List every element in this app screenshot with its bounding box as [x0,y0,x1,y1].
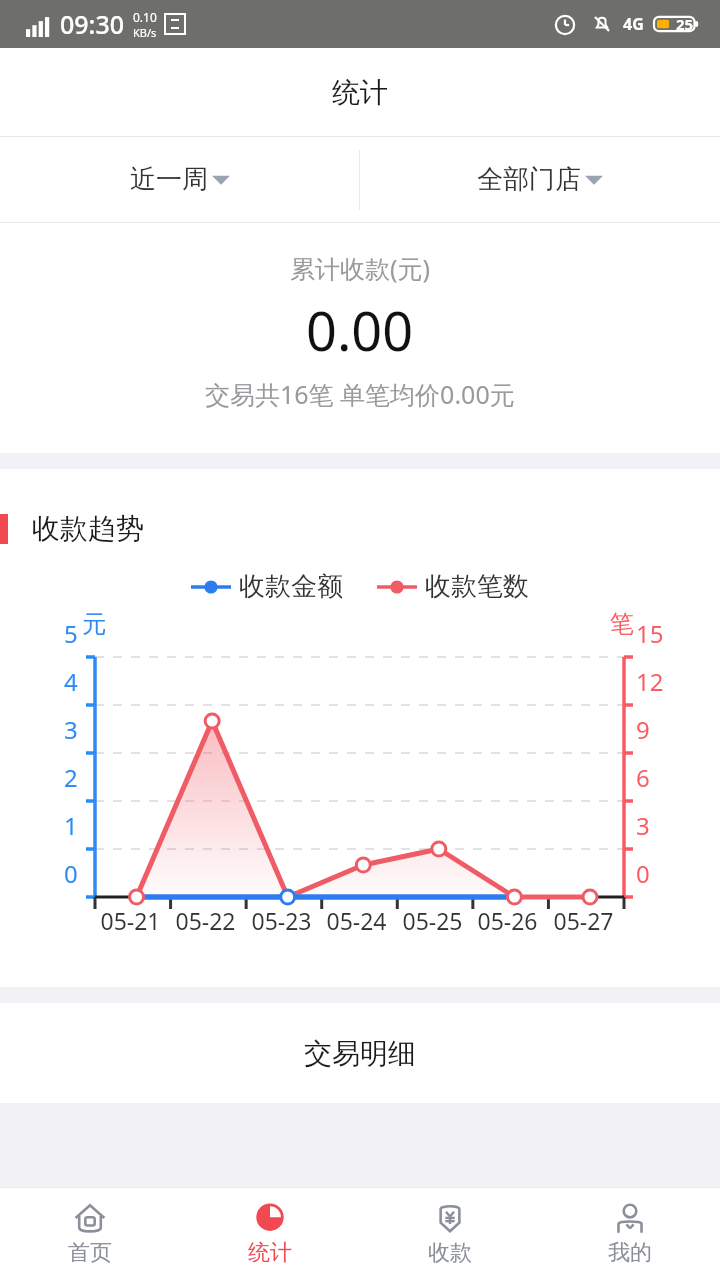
staticText: 12 [636,665,664,698]
staticText: 6 [636,761,650,794]
staticText: 统计 [332,75,388,110]
staticText: 9 [636,713,650,746]
staticText: 05-21 [100,905,161,936]
staticText: 累计收款(元) [290,251,431,285]
staticText: 0.00 [306,293,414,367]
staticText: 近一周 [130,163,208,196]
staticText: 笔 [610,609,634,639]
button[interactable]: 全部门店 [360,137,720,222]
staticText: 4G [623,13,644,35]
staticText: 3 [636,809,650,842]
staticText: 收款 [428,1239,472,1267]
staticText: 0 [636,857,650,890]
staticText: 统计 [248,1239,292,1267]
staticText: 全部门店 [477,163,581,196]
staticText: 交易明细 [304,1036,416,1071]
staticText: 2 [64,761,78,794]
staticText: 09:30 [60,7,125,41]
staticText: 05-25 [402,905,463,936]
staticText: 15 [636,617,664,650]
staticText: 05-27 [553,905,614,936]
staticText: 3 [64,713,78,746]
staticText: 交易共16笔 单笔均价0.00元 [205,377,515,411]
button[interactable]: 交易明细 [0,1003,720,1103]
button[interactable]: 我的 [540,1188,720,1280]
staticText: 05-23 [251,905,312,936]
staticText: 05-26 [477,905,538,936]
staticText: 收款金额 [239,570,343,603]
staticText: 5 [64,617,78,650]
button[interactable]: 首页 [0,1188,180,1280]
staticText: 首页 [68,1239,112,1267]
staticText: 收款笔数 [425,570,529,603]
staticText: 0 [64,857,78,890]
staticText: 05-24 [326,905,387,936]
button[interactable]: 近一周 [0,137,359,222]
staticText: 0.10 [133,9,157,25]
staticText: 4 [64,665,78,698]
staticText: 05-22 [175,905,236,936]
button[interactable]: 统计 [180,1188,360,1280]
staticText: 25 [676,14,694,34]
staticText: 1 [64,809,78,842]
staticText: 元 [82,609,106,639]
staticText: 收款趋势 [32,511,144,546]
staticText: 我的 [608,1239,652,1267]
button[interactable]: 收款 [360,1188,540,1280]
staticText: KB/s [133,25,157,40]
